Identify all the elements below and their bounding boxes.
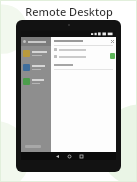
button[interactable]: Back — [51, 152, 63, 160]
staticText: Remote Desktop — [25, 4, 113, 19]
button[interactable] — [21, 74, 51, 88]
button[interactable] — [21, 60, 51, 74]
button[interactable]: Recent apps — [75, 152, 87, 160]
button[interactable]: Connect — [110, 53, 115, 59]
button[interactable] — [51, 46, 116, 53]
button[interactable] — [51, 53, 116, 60]
button[interactable]: Close — [111, 40, 114, 43]
button[interactable]: Home — [63, 152, 75, 160]
button[interactable] — [21, 46, 51, 60]
button[interactable] — [21, 37, 51, 46]
